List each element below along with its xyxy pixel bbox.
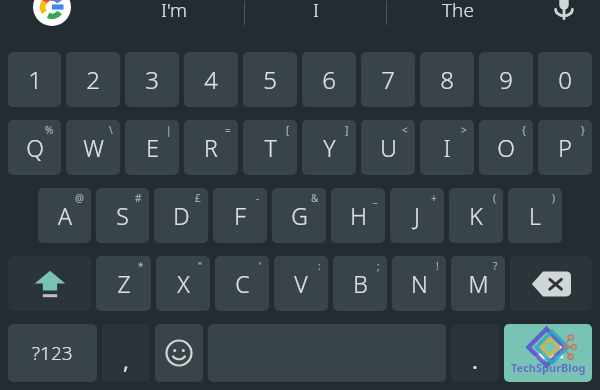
staticText: £	[195, 191, 201, 205]
staticText: #	[135, 191, 142, 205]
staticText: N	[411, 268, 428, 299]
button[interactable]: J	[390, 188, 444, 243]
button[interactable]: 0	[538, 52, 592, 107]
button[interactable]: O	[479, 120, 533, 175]
staticText: %	[45, 123, 54, 137]
button[interactable]: S	[96, 188, 149, 243]
staticText: :	[318, 259, 321, 273]
staticText: 9	[499, 63, 513, 96]
staticText: .	[472, 345, 478, 375]
staticText: &	[311, 191, 319, 205]
staticText: ;	[377, 259, 380, 273]
button[interactable]: Google Search	[0, 0, 104, 38]
staticText: T	[264, 132, 277, 163]
button[interactable]: Emoji	[155, 324, 203, 382]
staticText: X	[177, 268, 190, 299]
staticText: ]	[345, 123, 349, 137]
staticText: 4	[204, 63, 218, 96]
staticText: S	[116, 200, 129, 231]
staticText: -	[256, 191, 260, 205]
staticText: W	[83, 132, 104, 163]
button[interactable]: .	[451, 324, 499, 382]
staticText: (	[493, 191, 496, 205]
button[interactable]: K	[449, 188, 503, 243]
staticText: C	[235, 268, 250, 299]
staticText: ?	[493, 259, 498, 273]
button[interactable]: D	[154, 188, 208, 243]
staticText: @	[75, 191, 84, 205]
staticText: 0	[558, 63, 572, 96]
button[interactable]: E	[125, 120, 179, 175]
button[interactable]: A	[38, 188, 91, 243]
staticText: !	[436, 259, 439, 273]
staticText: 5	[263, 63, 277, 96]
staticText: R	[204, 132, 218, 163]
staticText: L	[529, 200, 541, 231]
button[interactable]: I'm	[104, 0, 244, 38]
button[interactable]: Q	[8, 120, 61, 175]
button[interactable]: C	[215, 256, 269, 311]
button[interactable]: W	[66, 120, 120, 175]
staticText: ,	[123, 345, 129, 375]
staticText: "	[198, 259, 203, 273]
staticText: V	[294, 268, 308, 299]
button[interactable]: 2	[66, 52, 120, 107]
staticText: *	[138, 259, 144, 273]
button[interactable]: N	[392, 256, 446, 311]
button[interactable]: V	[274, 256, 328, 311]
button[interactable]: 9	[479, 52, 533, 107]
staticText: |	[166, 123, 172, 137]
staticText: P	[558, 132, 572, 163]
staticText: >	[461, 123, 467, 137]
button[interactable]: Enter	[504, 324, 592, 382]
button[interactable]: 4	[184, 52, 238, 107]
button[interactable]: ?123	[8, 324, 97, 382]
button[interactable]: 1	[8, 52, 61, 107]
staticText: B	[353, 268, 368, 299]
staticText: 2	[86, 63, 100, 96]
staticText: Y	[323, 132, 336, 163]
staticText: 3	[145, 63, 159, 96]
staticText: I'm	[161, 0, 188, 23]
staticText: Z	[117, 268, 131, 299]
button[interactable]: G	[272, 188, 326, 243]
button[interactable]: 8	[420, 52, 474, 107]
button[interactable]: Backspace	[510, 256, 592, 311]
button[interactable]: H	[331, 188, 385, 243]
button[interactable]: Shift caps lock	[8, 256, 91, 311]
button[interactable]: R	[184, 120, 238, 175]
button[interactable]: ,	[102, 324, 150, 382]
staticText: }	[581, 123, 585, 137]
staticText: )	[552, 191, 555, 205]
button[interactable]: 3	[125, 52, 179, 107]
staticText: [	[286, 123, 290, 137]
staticText: U	[380, 132, 397, 163]
staticText: D	[173, 200, 190, 231]
staticText: 7	[381, 63, 395, 96]
button[interactable]: Z	[96, 256, 151, 311]
button[interactable]: 5	[243, 52, 297, 107]
staticText: '	[259, 259, 262, 273]
button[interactable]: I	[420, 120, 474, 175]
button[interactable]: T	[243, 120, 297, 175]
staticText: H	[350, 200, 367, 231]
staticText: 6	[322, 63, 336, 96]
button[interactable]: B	[333, 256, 387, 311]
button[interactable]: Voice input	[528, 0, 600, 38]
staticText: 1	[28, 63, 42, 96]
button[interactable]: X	[156, 256, 210, 311]
button[interactable]: M	[451, 256, 505, 311]
button[interactable]: The	[387, 0, 528, 38]
button[interactable]: L	[508, 188, 562, 243]
button[interactable]: Y	[302, 120, 356, 175]
button[interactable]: 6	[302, 52, 356, 107]
button[interactable]: I	[245, 0, 386, 38]
staticText: ?123	[32, 340, 73, 366]
staticText: Q	[26, 132, 44, 163]
staticText: F	[234, 200, 246, 231]
button[interactable]: U	[361, 120, 415, 175]
button[interactable]: P	[538, 120, 592, 175]
button[interactable]: F	[213, 188, 267, 243]
button[interactable]: 7	[361, 52, 415, 107]
